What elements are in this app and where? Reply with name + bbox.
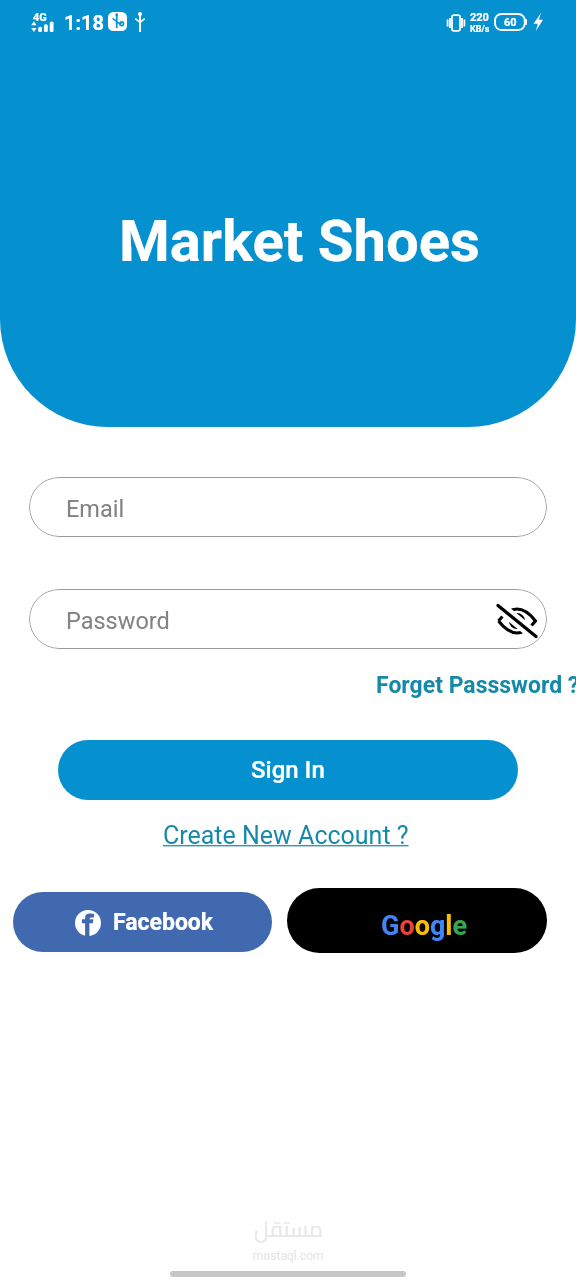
staticText: Sign In — [251, 756, 325, 784]
button[interactable]: Email — [29, 477, 547, 537]
button[interactable]: Password — [29, 589, 547, 649]
staticText: 60 — [504, 16, 517, 29]
button[interactable]: Forget Passsword ? — [372, 668, 576, 703]
staticText: Forget Passsword ? — [376, 672, 576, 699]
staticText: Email — [66, 495, 125, 523]
button[interactable]: Toggle password visibility — [494, 598, 540, 644]
button[interactable]: Sign In — [58, 740, 518, 800]
staticText: مستقل — [254, 1208, 323, 1249]
staticText: 4G — [33, 11, 47, 24]
staticText: 1:18 — [64, 11, 105, 34]
staticText: 220 — [470, 11, 489, 24]
staticText: Password — [66, 607, 170, 635]
button[interactable]: Google — [287, 888, 547, 953]
staticText: Google — [381, 910, 468, 942]
staticText: Market Shoes — [119, 207, 480, 275]
button[interactable]: Facebook — [13, 892, 272, 952]
staticText: Create New Account ? — [163, 821, 415, 850]
staticText: KB/s — [470, 24, 490, 35]
staticText: mostaql.com — [253, 1249, 324, 1263]
staticText: Facebook — [113, 909, 214, 936]
button[interactable]: Create New Account ? — [163, 821, 415, 850]
